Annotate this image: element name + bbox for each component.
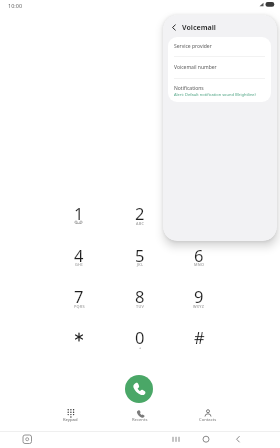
button[interactable]: Contacts xyxy=(182,409,234,432)
button[interactable]: 0 xyxy=(118,322,162,352)
staticText: + xyxy=(139,345,142,350)
staticText: PQRS xyxy=(74,304,85,309)
staticText: Keypad xyxy=(63,417,78,423)
button[interactable]: # xyxy=(177,322,221,352)
staticText: 0 xyxy=(135,326,145,348)
staticText: MNO xyxy=(194,262,205,267)
staticText: 2 xyxy=(135,202,145,224)
staticText: 7 xyxy=(74,285,84,307)
staticText: # xyxy=(194,326,205,348)
staticText: 4 xyxy=(74,244,84,266)
staticText: JKL xyxy=(137,262,144,267)
staticText: Notifications xyxy=(174,85,204,92)
staticText: Service provider xyxy=(174,43,212,50)
button[interactable]: 5 xyxy=(118,240,162,270)
button[interactable]: 9 xyxy=(177,281,221,311)
button[interactable]: Voicemail xyxy=(182,23,216,33)
button[interactable]: Keypad xyxy=(44,409,96,432)
button[interactable]: 1 xyxy=(57,198,101,228)
button[interactable]: 2 xyxy=(118,198,162,228)
staticText: Contacts xyxy=(199,417,217,423)
staticText: Recents xyxy=(132,417,148,423)
button[interactable]: 7 xyxy=(57,281,101,311)
staticText: 9 xyxy=(194,285,204,307)
staticText: 6 xyxy=(194,244,204,266)
staticText: 1 xyxy=(74,202,84,224)
button[interactable]: 8 xyxy=(118,281,162,311)
button[interactable]: Service provider xyxy=(168,37,271,56)
button[interactable]: 6 xyxy=(177,240,221,270)
staticText: TUV xyxy=(136,304,145,309)
staticText: 10:00 xyxy=(8,2,23,9)
staticText: Voicemail number xyxy=(174,64,217,71)
button[interactable]: Recents xyxy=(114,409,166,432)
button[interactable] xyxy=(125,375,153,403)
staticText: Alert: Default notification sound (Brigh… xyxy=(174,92,256,97)
staticText: ABC xyxy=(136,221,145,226)
button[interactable]: Notifications xyxy=(168,79,271,102)
staticText: WXYZ xyxy=(193,304,205,309)
staticText: 8 xyxy=(135,285,145,307)
staticText: GHI xyxy=(75,262,83,267)
button[interactable]: Voicemail number xyxy=(168,57,271,78)
button[interactable] xyxy=(57,322,101,352)
staticText: 5 xyxy=(135,244,145,266)
button[interactable]: 4 xyxy=(57,240,101,270)
